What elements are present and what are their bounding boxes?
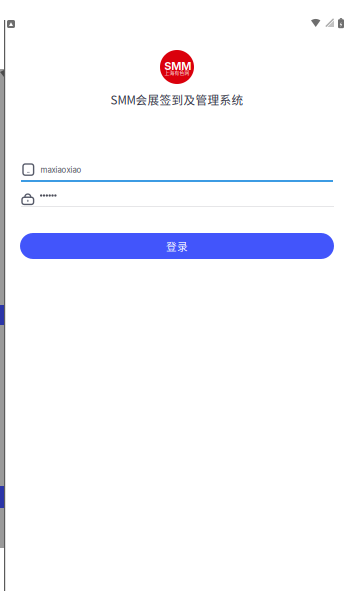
button[interactable]: 登录 bbox=[20, 233, 334, 259]
staticText: 上海有色网 bbox=[164, 69, 189, 76]
staticText: 登录 bbox=[166, 238, 188, 254]
staticText: SMM bbox=[164, 59, 191, 73]
staticText: SMM会展签到及管理系统 bbox=[110, 91, 243, 108]
staticText: maxiaoxiao bbox=[40, 165, 81, 175]
